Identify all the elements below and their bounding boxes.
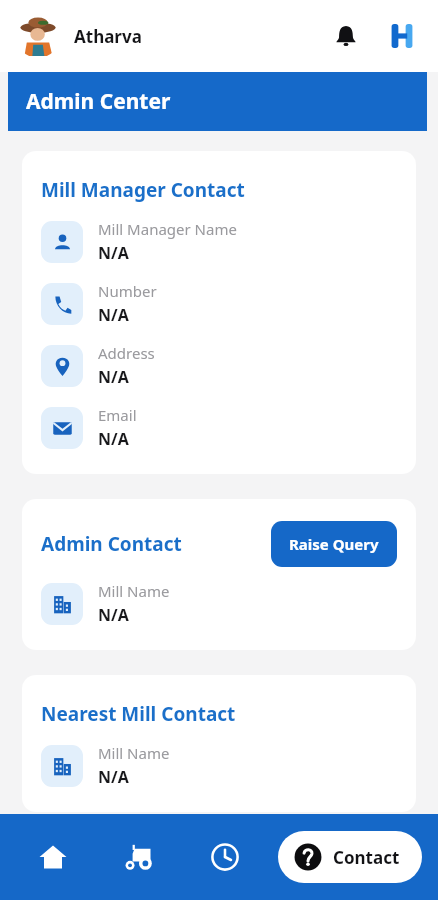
button[interactable]: History — [182, 827, 268, 887]
staticText: Mill Name — [98, 581, 170, 601]
staticText: N/A — [98, 428, 129, 450]
button[interactable]: Number — [41, 283, 397, 328]
staticText: Address — [98, 343, 155, 363]
button[interactable]: Email — [41, 407, 397, 452]
button[interactable]: Home — [10, 827, 96, 887]
staticText: N/A — [98, 304, 129, 326]
button[interactable]: Equipment — [96, 827, 182, 887]
staticText: Mill Manager Contact — [41, 177, 245, 203]
staticText: Contact — [333, 846, 400, 869]
staticText: Raise Query — [289, 534, 379, 554]
button[interactable]: Mill Name — [41, 745, 397, 790]
staticText: Nearest Mill Contact — [41, 701, 236, 727]
button[interactable]: Notifications — [326, 16, 366, 56]
button[interactable]: App logo — [382, 16, 422, 56]
staticText: Atharva — [74, 25, 142, 48]
button[interactable]: Mill Name — [41, 583, 397, 628]
staticText: Admin Center — [26, 87, 171, 116]
staticText: Number — [98, 281, 157, 301]
staticText: N/A — [98, 366, 129, 388]
button[interactable]: Mill Manager Name — [41, 221, 397, 266]
staticText: Email — [98, 405, 137, 425]
staticText: Mill Name — [98, 743, 170, 763]
button[interactable]: Raise Query — [271, 521, 397, 567]
staticText: Mill Manager Name — [98, 219, 237, 239]
staticText: N/A — [98, 604, 129, 626]
button[interactable]: Address — [41, 345, 397, 390]
staticText: Admin Contact — [41, 531, 182, 557]
staticText: N/A — [98, 766, 129, 788]
staticText: N/A — [98, 242, 129, 264]
button[interactable]: Contact — [278, 831, 422, 883]
button[interactable]: Profile — [16, 14, 60, 58]
